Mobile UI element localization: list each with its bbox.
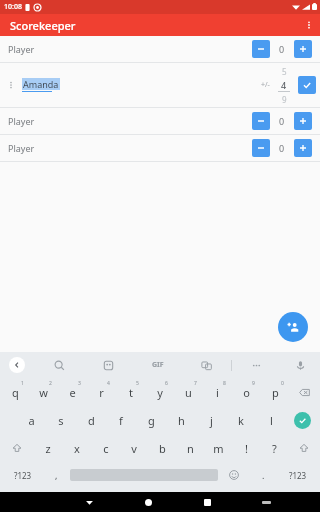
staticText: n [187, 441, 194, 456]
staticText: s [58, 413, 64, 428]
staticText: Amanda [23, 78, 59, 90]
button[interactable]: sticker [84, 352, 133, 378]
button[interactable]: Player [0, 36, 320, 62]
staticText: 0 [279, 43, 285, 55]
staticText: 7 [194, 380, 197, 387]
button[interactable]: Increment [294, 40, 312, 58]
button[interactable]: Shift [1, 434, 33, 462]
button[interactable]: ?123 [277, 462, 318, 488]
button[interactable]: h [166, 406, 196, 434]
button[interactable]: More options [298, 14, 320, 36]
button[interactable]: u [174, 378, 203, 406]
button[interactable]: a [16, 406, 46, 434]
button[interactable]: Increment [294, 139, 312, 157]
staticText: h [178, 413, 185, 428]
button[interactable]: q [1, 378, 29, 406]
button[interactable]: Add player [278, 312, 308, 342]
button[interactable]: Shift [288, 434, 319, 462]
staticText: 8 [223, 380, 226, 387]
button[interactable]: Decrement [252, 139, 270, 157]
staticText: r [99, 385, 104, 400]
button[interactable]: Player [0, 108, 320, 134]
button[interactable]: gif [133, 352, 182, 378]
button[interactable]: Backspace [290, 378, 319, 406]
button[interactable]: g [136, 406, 166, 434]
button[interactable]: t [116, 378, 145, 406]
staticText: Player [8, 115, 35, 127]
staticText: ! [245, 441, 248, 456]
button[interactable]: Emoji [218, 462, 250, 488]
button[interactable]: Reorder [4, 78, 18, 92]
button[interactable]: ! [232, 434, 260, 462]
button[interactable]: more [232, 352, 281, 378]
button[interactable]: Increment [294, 112, 312, 130]
button[interactable]: ? [260, 434, 288, 462]
button[interactable]: x [62, 434, 91, 462]
button[interactable]: Decrement [252, 40, 270, 58]
button[interactable]: l [256, 406, 286, 434]
button[interactable]: c [91, 434, 120, 462]
staticText: d [88, 413, 95, 428]
button[interactable]: p [261, 378, 290, 406]
staticText: 5 [136, 380, 139, 387]
staticText: i [216, 385, 219, 400]
button[interactable]: Player [0, 135, 320, 161]
staticText: 9 [282, 94, 287, 105]
staticText: k [238, 413, 244, 428]
button[interactable]: Reorder [0, 63, 320, 107]
staticText: , [55, 469, 58, 481]
button[interactable]: , [43, 462, 70, 488]
staticText: 9 [252, 380, 255, 387]
staticText: b [159, 441, 166, 456]
staticText: ? [272, 441, 277, 456]
button[interactable]: s [46, 406, 76, 434]
button[interactable]: i [203, 378, 232, 406]
button[interactable]: w [29, 378, 58, 406]
button[interactable]: translate [182, 352, 231, 378]
staticText: p [272, 385, 279, 400]
staticText: m [213, 441, 224, 456]
staticText: 0 [279, 115, 285, 127]
button[interactable]: Back [0, 352, 34, 378]
staticText: +/- [261, 80, 270, 90]
button[interactable]: d [76, 406, 106, 434]
button[interactable]: Enter [286, 406, 319, 434]
staticText: y [157, 385, 163, 400]
button[interactable]: Recents [178, 492, 237, 512]
button[interactable]: ?123 [2, 462, 43, 488]
button[interactable]: v [120, 434, 148, 462]
staticText: t [129, 385, 133, 400]
button[interactable]: m [204, 434, 232, 462]
button[interactable]: Decrement [252, 112, 270, 130]
button[interactable]: r [87, 378, 116, 406]
button[interactable]: j [196, 406, 226, 434]
button[interactable]: o [232, 378, 261, 406]
staticText: w [39, 385, 48, 400]
button[interactable]: search [34, 352, 84, 378]
staticText: 5 [282, 66, 287, 77]
staticText: 1 [21, 380, 24, 387]
button[interactable]: Switch keyboard [237, 492, 296, 512]
button[interactable]: k [226, 406, 256, 434]
button[interactable]: z [33, 434, 62, 462]
staticText: g [148, 413, 155, 428]
button[interactable]: b [148, 434, 176, 462]
staticText: x [74, 441, 80, 456]
staticText: . [262, 469, 265, 481]
button[interactable]: n [176, 434, 204, 462]
button[interactable]: Back [60, 492, 119, 512]
button[interactable]: y [145, 378, 174, 406]
button[interactable]: Confirm [298, 76, 316, 94]
staticText: c [103, 441, 109, 456]
button[interactable]: f [106, 406, 136, 434]
staticText: 0 [279, 142, 285, 154]
button[interactable]: mic [281, 352, 320, 378]
button[interactable]: . [250, 462, 277, 488]
staticText: ?123 [289, 470, 307, 481]
staticText: 4 [281, 79, 287, 91]
button[interactable]: e [58, 378, 87, 406]
staticText: GIF [152, 360, 164, 370]
staticText: 4 [107, 380, 110, 387]
button[interactable]: Home [119, 492, 178, 512]
